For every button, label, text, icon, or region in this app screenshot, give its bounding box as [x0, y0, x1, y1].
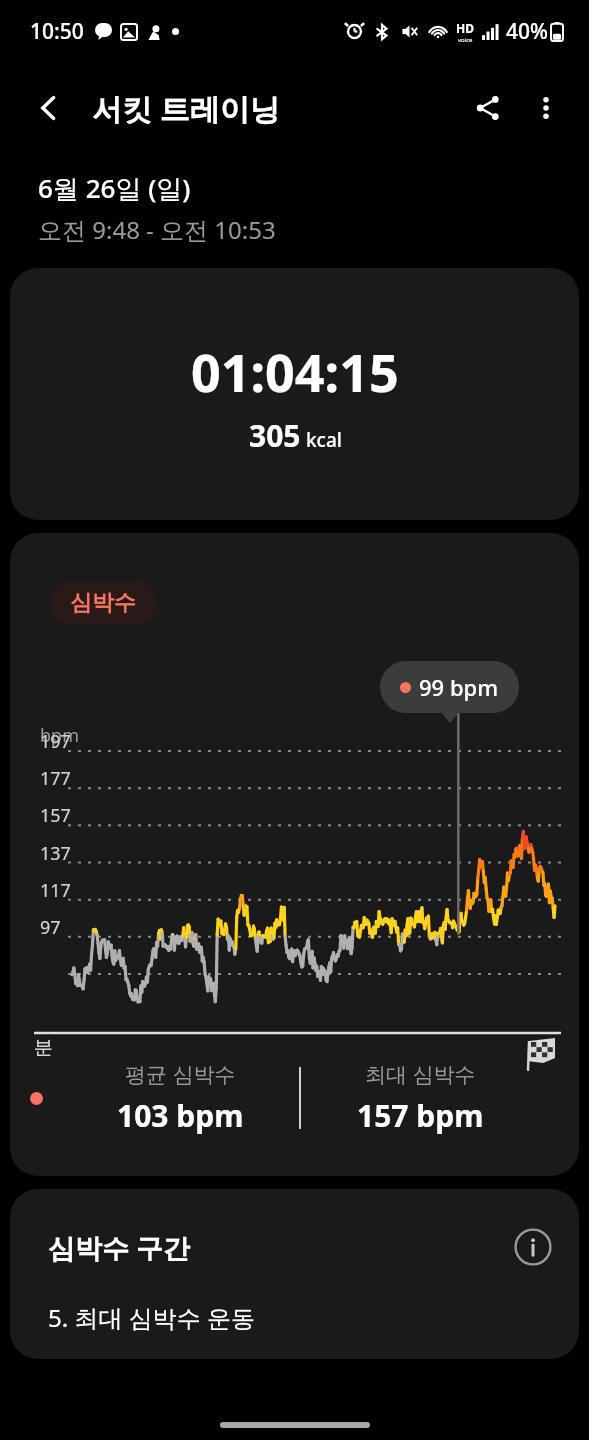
staticText: 심박수 구간 [48, 1229, 191, 1266]
staticText: 157 [40, 803, 71, 828]
staticText: 305 [249, 415, 301, 456]
staticText: 오전 9:48 - 오전 10:53 [38, 213, 276, 246]
staticText: bpm [40, 723, 79, 748]
staticText: 197 [40, 729, 71, 754]
staticText: 심박수 [70, 589, 136, 617]
staticText: 97 [40, 915, 61, 940]
button[interactable]: 심박수 [50, 581, 156, 625]
staticText: 분 [34, 1036, 53, 1060]
staticText: 5. 최대 심박수 운동 [48, 1301, 255, 1334]
button[interactable]: 심박수 구간 [10, 1189, 579, 1359]
staticText: 01:04:15 [191, 336, 399, 407]
button[interactable]: Info [505, 1219, 561, 1275]
button[interactable]: Share [459, 79, 517, 137]
staticText: 서킷 트레이닝 [92, 88, 280, 129]
staticText: 117 [40, 878, 71, 903]
button[interactable]: More options [517, 79, 575, 137]
staticText: 157 bpm [357, 1095, 484, 1136]
staticText: kcal [306, 427, 342, 453]
staticText: 평균 심박수 [125, 1060, 236, 1089]
button[interactable]: 01:04:15 [10, 268, 579, 520]
staticText: 6월 26일 (일) [38, 170, 191, 206]
button[interactable]: Back [22, 81, 76, 135]
staticText: HD [456, 20, 474, 36]
staticText: 137 [40, 841, 71, 866]
staticText: 10:50 [30, 17, 84, 46]
staticText: 40% [506, 17, 548, 46]
staticText: 177 [40, 766, 71, 791]
staticText: voice [458, 36, 473, 44]
staticText: 최대 심박수 [365, 1060, 476, 1089]
staticText: 103 bpm [117, 1095, 244, 1136]
staticText: 99 bpm [419, 672, 499, 702]
